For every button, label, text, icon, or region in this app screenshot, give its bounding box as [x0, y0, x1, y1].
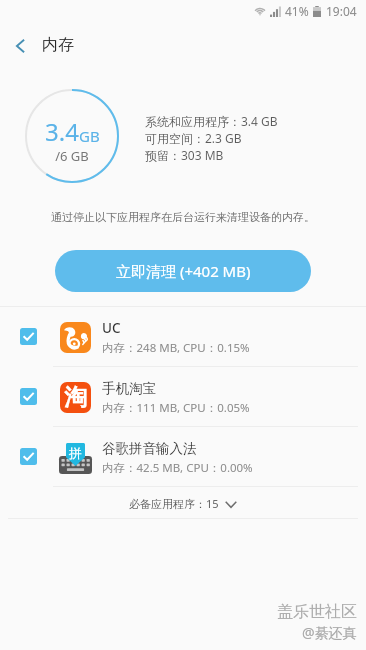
staticText: 预留：303 MB [145, 147, 224, 163]
button[interactable]: 立即清理 (+402 MB) [55, 250, 311, 292]
button[interactable]: 必备应用程序：15 [0, 487, 366, 519]
button[interactable]: Back [3, 24, 37, 68]
staticText: 19:04 [326, 3, 357, 19]
staticText: 可用空间：2.3 GB [145, 130, 242, 146]
staticText: 淘 [64, 383, 87, 412]
staticText: 通过停止以下应用程序在后台运行来清理设备的内存。 [0, 210, 366, 224]
staticText: UC [102, 319, 121, 337]
button[interactable]: UC [0, 307, 366, 366]
button[interactable]: 淘 [0, 367, 366, 426]
staticText: GB [79, 126, 100, 146]
staticText: 必备应用程序：15 [129, 496, 219, 511]
button[interactable]: 拼 [0, 427, 366, 486]
staticText: 内存 [42, 35, 74, 55]
staticText: @綦还真 [302, 623, 357, 642]
staticText: 系统和应用程序：3.4 GB [145, 113, 278, 129]
staticText: /6 GB [25, 147, 119, 165]
staticText: 手机淘宝 [102, 380, 156, 397]
staticText: 3.4 [45, 115, 79, 148]
staticText: 41% [285, 3, 309, 19]
staticText: 内存：42.5 MB, CPU：0.00% [102, 460, 253, 476]
staticText: 盖乐世社区 [277, 602, 357, 622]
staticText: 立即清理 (+402 MB) [116, 261, 251, 281]
staticText: 内存：248 MB, CPU：0.15% [102, 340, 250, 356]
staticText: 内存：111 MB, CPU：0.05% [102, 400, 250, 416]
staticText: 谷歌拼音输入法 [102, 440, 197, 457]
staticText: 拼 [69, 445, 82, 461]
